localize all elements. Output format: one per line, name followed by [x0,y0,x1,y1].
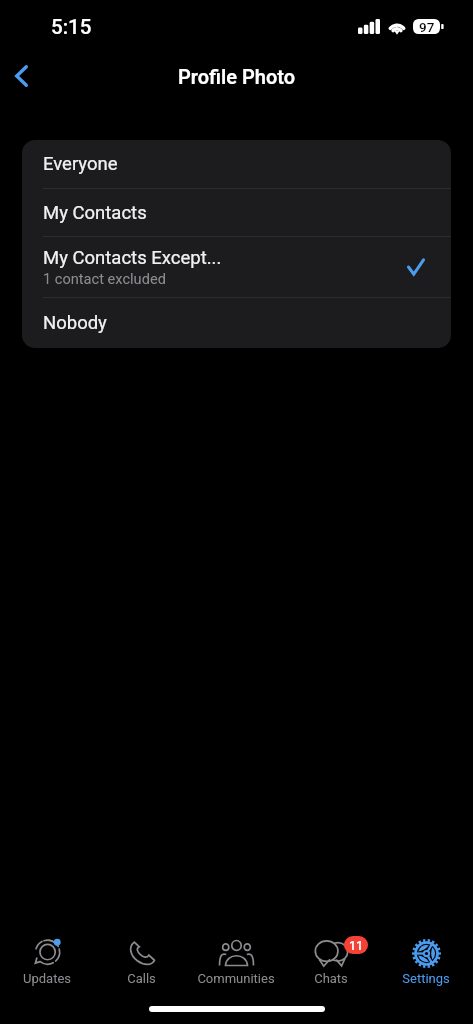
staticText: Profile Photo [178,65,296,88]
staticText: Settings [402,971,450,986]
button[interactable]: 11 [283,932,378,1024]
staticText: Everyone [43,153,118,175]
staticText: 1 contact excluded [43,270,166,287]
button[interactable]: Updates [0,932,94,1024]
staticText: Updates [23,971,71,986]
button[interactable]: My Contacts Except... [22,237,451,297]
button[interactable]: Everyone [22,140,451,188]
button[interactable]: Nobody [22,298,451,348]
button[interactable]: Back [0,50,45,102]
button[interactable]: Calls [94,932,188,1024]
staticText: My Contacts Except... [43,247,222,269]
staticText: 11 [349,938,364,953]
button[interactable]: Settings [378,932,473,1024]
staticText: My Contacts [43,202,147,224]
staticText: Calls [127,971,156,986]
button[interactable]: Communities [188,932,283,1024]
staticText: 5:15 [51,15,92,39]
staticText: Chats [314,971,348,986]
staticText: 97 [419,19,435,34]
button[interactable]: My Contacts [22,189,451,236]
staticText: Communities [197,971,275,986]
staticText: Nobody [43,312,107,334]
